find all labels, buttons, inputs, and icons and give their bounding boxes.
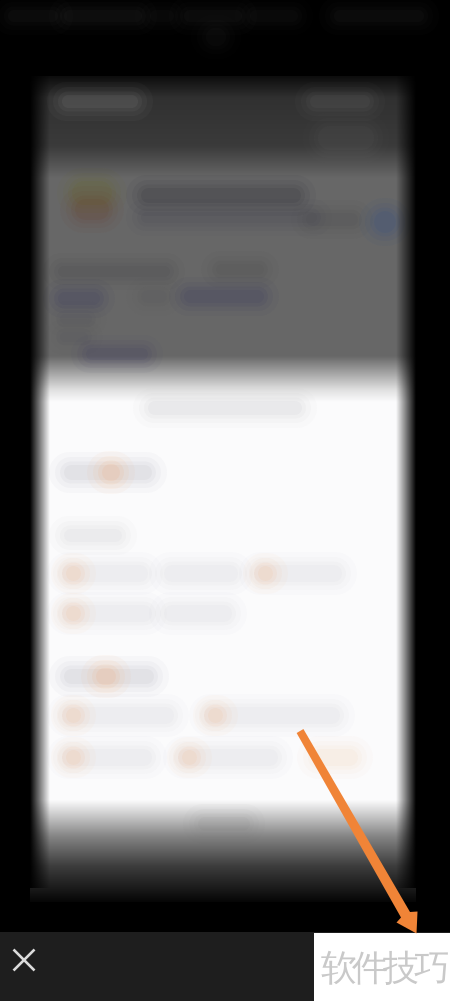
staticText: 软件技巧 xyxy=(321,946,450,990)
button[interactable]: Close xyxy=(0,936,48,984)
